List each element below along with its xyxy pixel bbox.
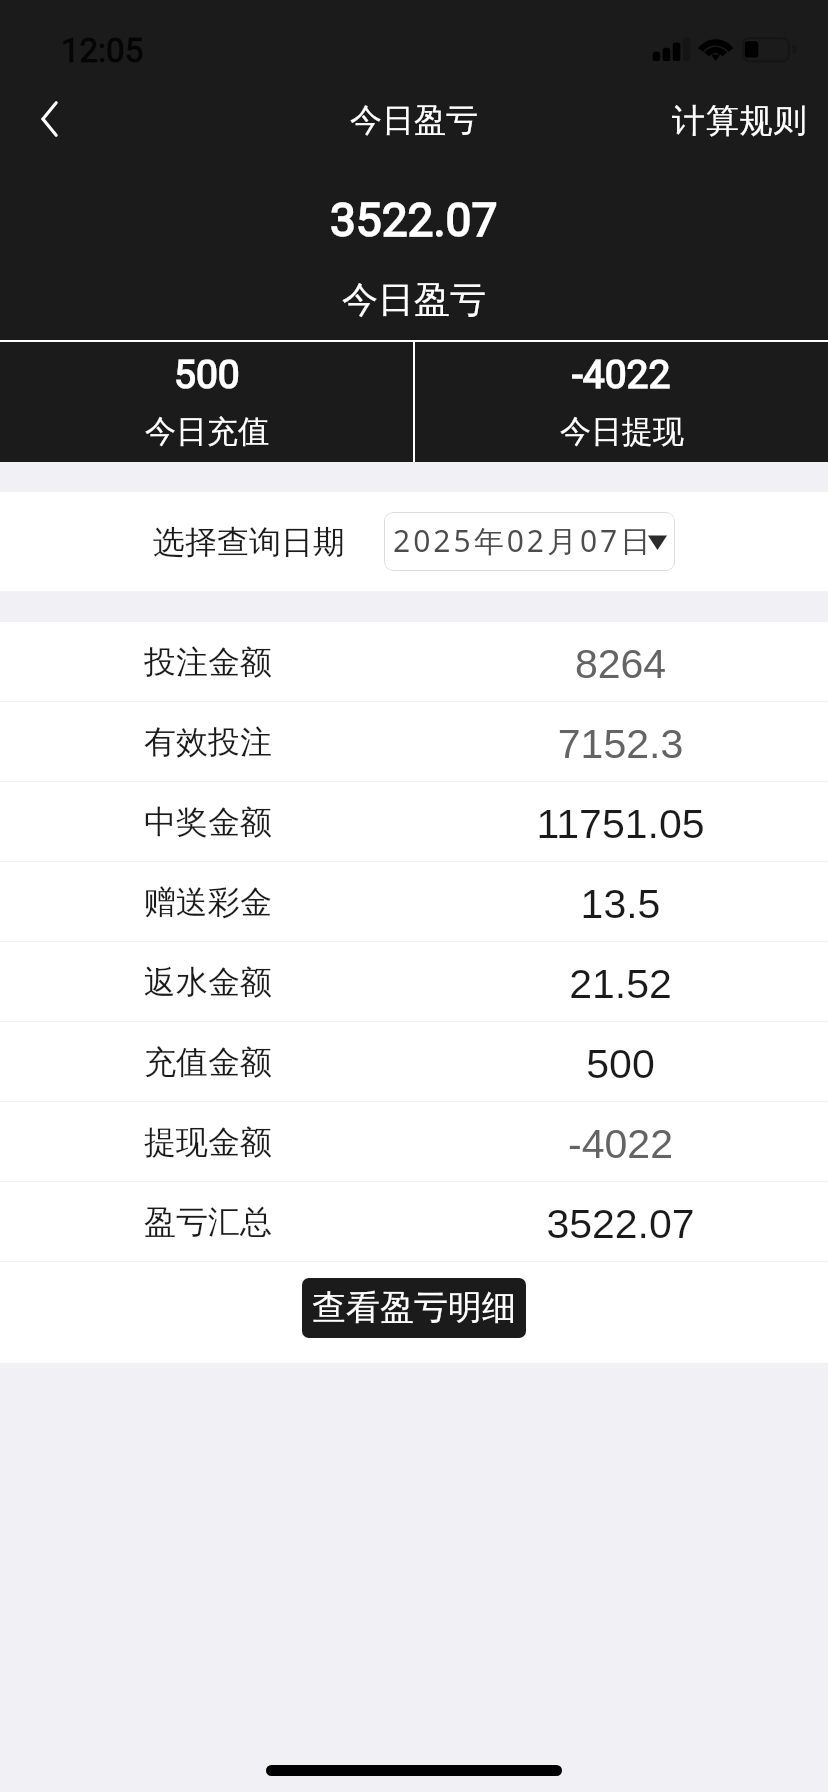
button[interactable]: 计算规则 (644, 88, 828, 160)
staticText: 赠送彩金 (144, 882, 272, 922)
staticText: 今日盈亏 (342, 277, 486, 322)
staticText: 12:05 (61, 31, 144, 70)
button[interactable]: -4022 (415, 342, 828, 462)
button[interactable]: 中奖金额 (0, 782, 828, 861)
staticText: 500 (174, 352, 240, 398)
button[interactable]: 投注金额 (0, 622, 828, 701)
staticText: 投注金额 (144, 642, 272, 682)
button[interactable]: 查看盈亏明细 (302, 1278, 526, 1338)
button[interactable]: 有效投注 (0, 702, 828, 781)
button[interactable]: 充值金额 (0, 1022, 828, 1101)
staticText: 选择查询日期 (153, 522, 345, 562)
staticText: 3522.07 (330, 193, 498, 247)
staticText: 今日盈亏 (350, 100, 478, 140)
staticText: 盈亏汇总 (144, 1202, 272, 1242)
staticText: 3522.07 (500, 1201, 741, 1247)
button[interactable]: Back (0, 88, 96, 160)
staticText: 今日充值 (145, 412, 269, 451)
staticText: 8264 (500, 641, 741, 687)
staticText: 11751.05 (500, 801, 741, 847)
button[interactable]: 赠送彩金 (0, 862, 828, 941)
button[interactable]: 提现金额 (0, 1102, 828, 1181)
staticText: 计算规则 (672, 100, 808, 142)
staticText: 查看盈亏明细 (312, 1286, 516, 1329)
staticText: 充值金额 (144, 1042, 272, 1082)
staticText: -4022 (500, 1121, 741, 1167)
button[interactable]: 500 (0, 342, 413, 462)
button[interactable]: 返水金额 (0, 942, 828, 1021)
staticText: -4022 (572, 352, 671, 398)
staticText: 2025年02月07日 (393, 520, 654, 561)
staticText: 中奖金额 (144, 802, 272, 842)
staticText: 13.5 (500, 881, 741, 927)
staticText: 返水金额 (144, 962, 272, 1002)
staticText: 今日提现 (560, 412, 684, 451)
staticText: 21.52 (500, 961, 741, 1007)
staticText: 7152.3 (500, 721, 741, 767)
button[interactable]: 2025年02月07日 (384, 512, 675, 571)
staticText: 500 (500, 1041, 741, 1087)
button[interactable]: 盈亏汇总 (0, 1182, 828, 1261)
staticText: 有效投注 (144, 722, 272, 762)
staticText: 提现金额 (144, 1122, 272, 1162)
